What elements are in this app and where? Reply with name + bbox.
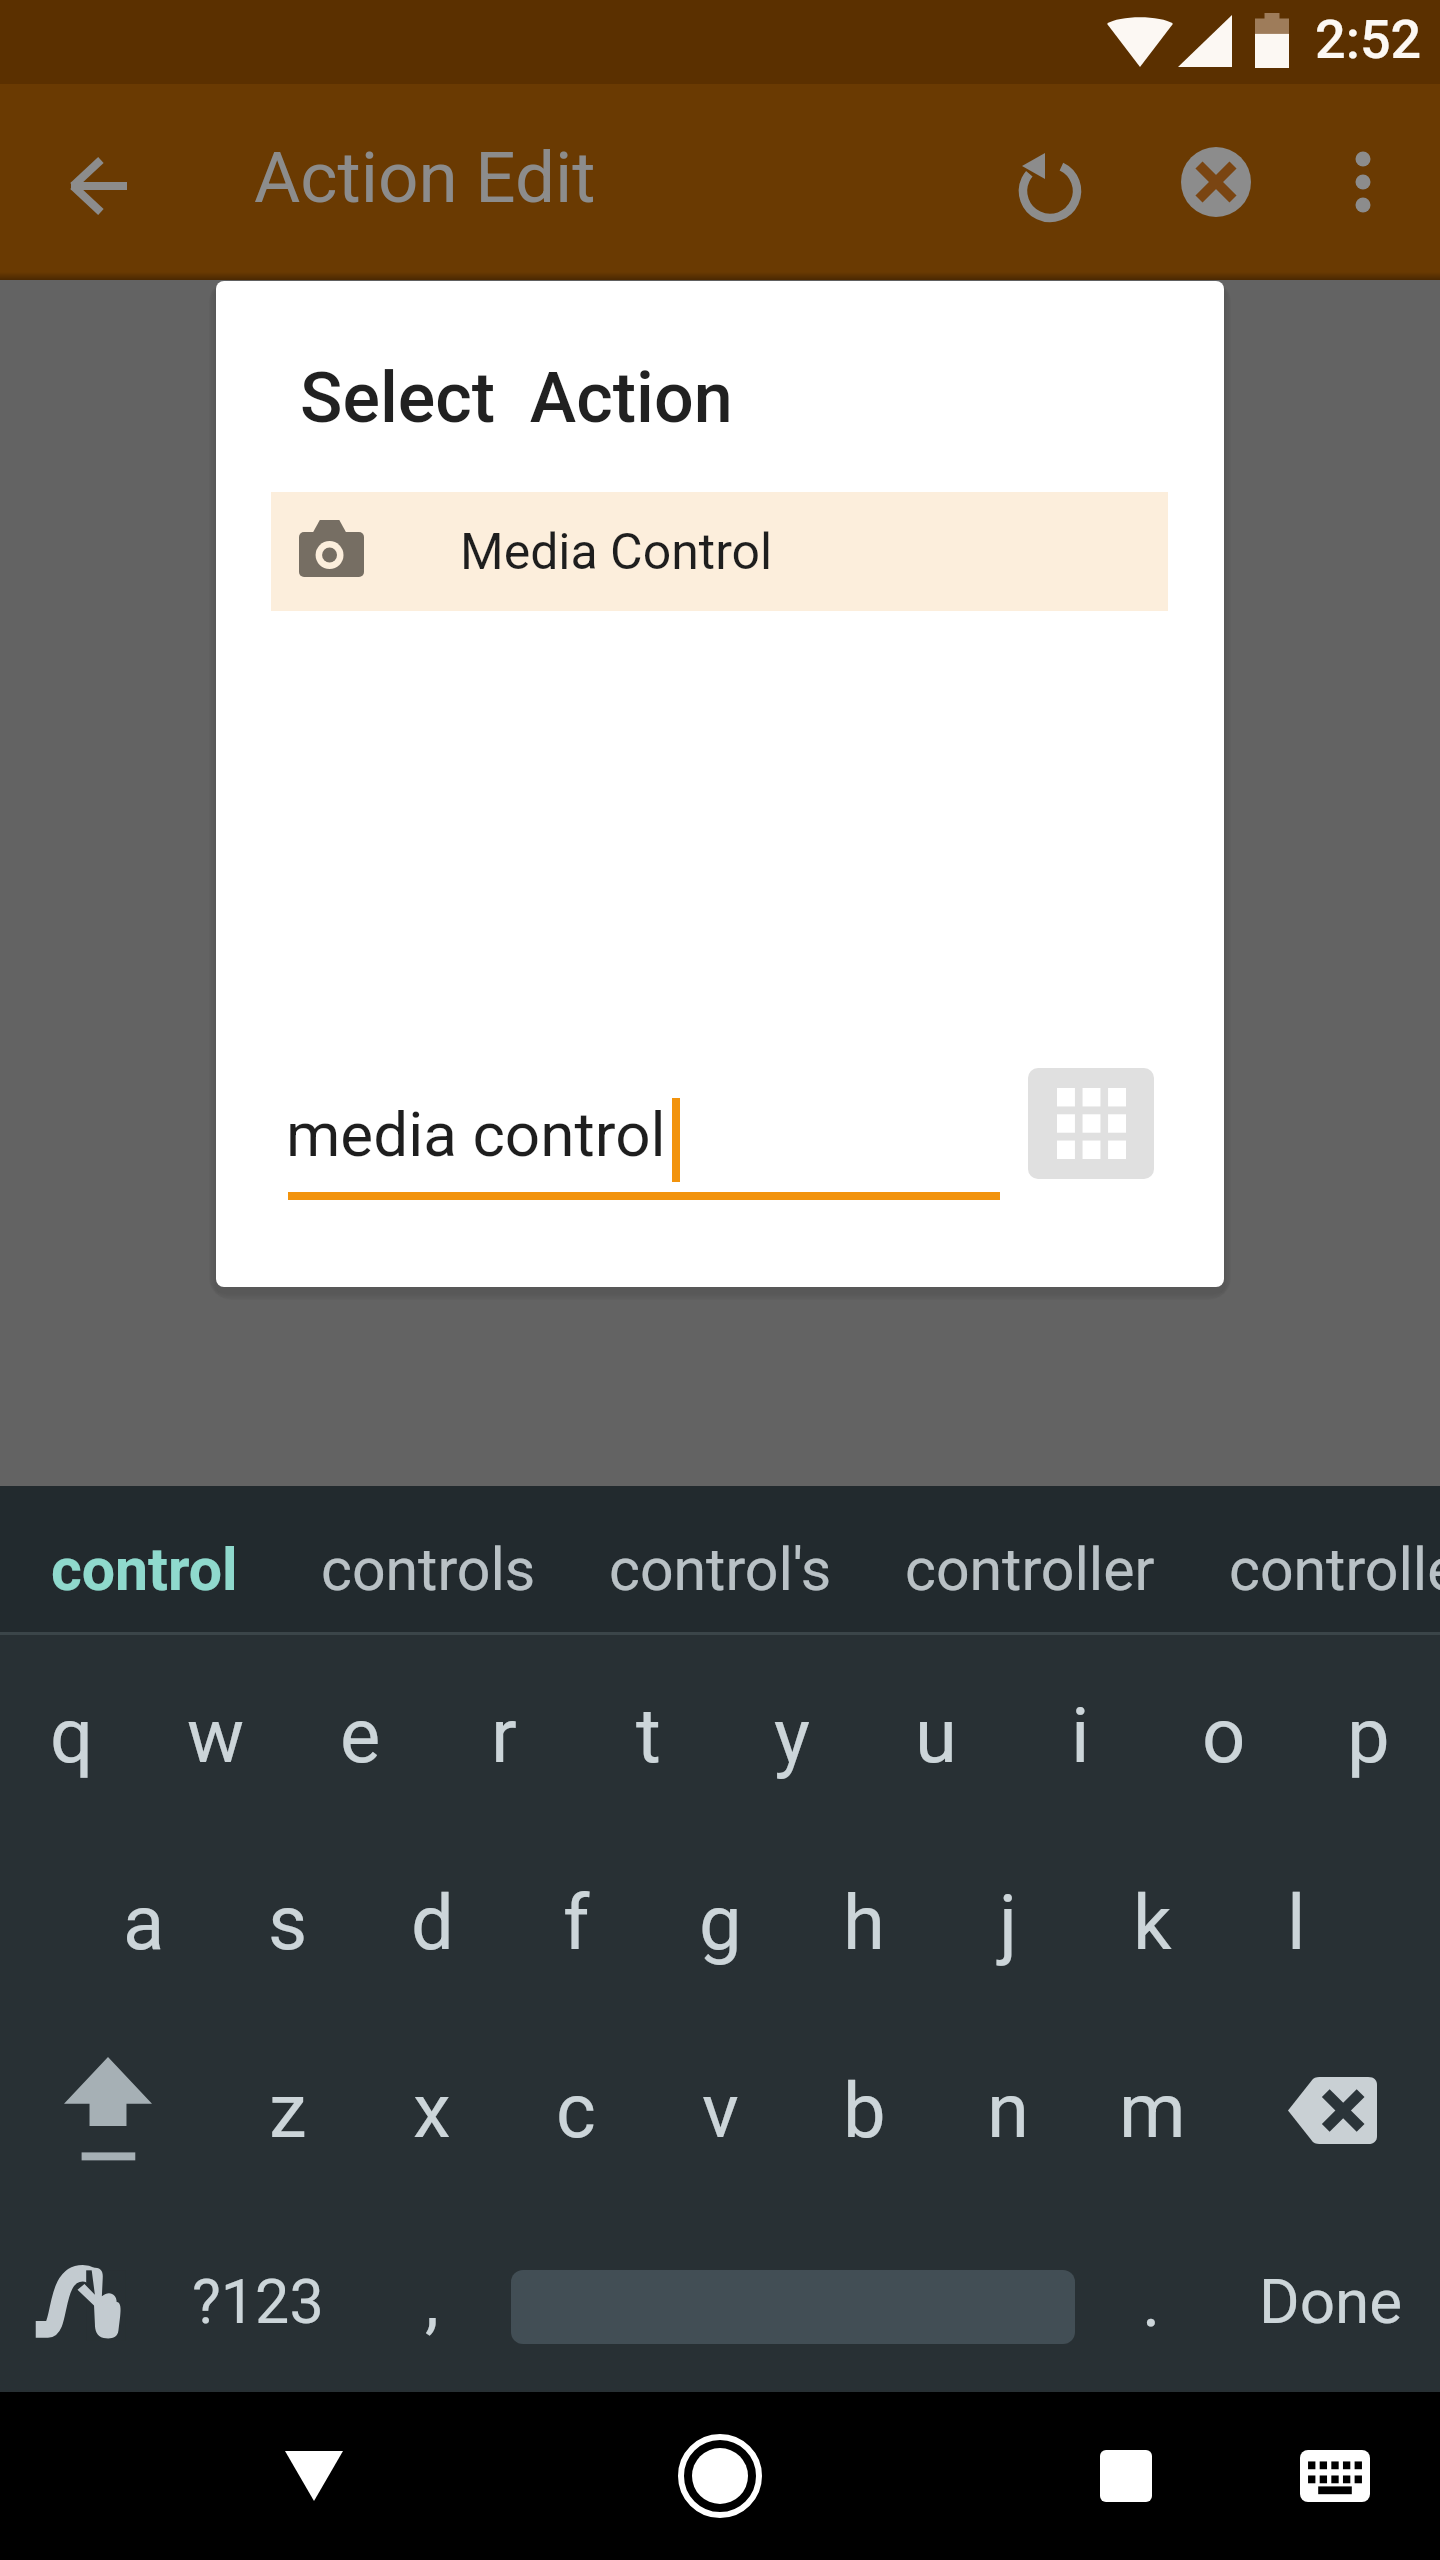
button[interactable]: Recent apps (1056, 2392, 1196, 2560)
staticText: d (411, 1878, 454, 1967)
staticText: j (999, 1878, 1018, 1967)
staticText: Action Edit (254, 136, 596, 219)
button[interactable]: e (288, 1635, 432, 1835)
button[interactable]: ?123 (155, 2211, 361, 2392)
button[interactable]: z (216, 2009, 360, 2211)
staticText: Select Action (300, 357, 733, 439)
staticText: 2:52 (1315, 8, 1422, 71)
button[interactable]: controls (321, 1486, 536, 1632)
button[interactable]: . (1080, 2211, 1222, 2392)
button[interactable]: g (648, 1835, 792, 2009)
staticText: control's (609, 1535, 832, 1604)
staticText: . (1142, 2261, 1161, 2343)
button[interactable]: r (432, 1635, 576, 1835)
staticText: c (556, 2066, 596, 2155)
button[interactable]: Media Control (271, 492, 1168, 611)
staticText: e (340, 1691, 381, 1780)
staticText: controls (321, 1535, 536, 1604)
staticText: Done (1259, 2265, 1403, 2338)
staticText: o (1202, 1691, 1246, 1780)
staticText: q (50, 1691, 94, 1780)
button[interactable]: w (144, 1635, 288, 1835)
button[interactable]: Voice input (0, 2211, 155, 2392)
staticText: z (269, 2066, 307, 2155)
staticText: r (491, 1691, 517, 1780)
staticText: w (187, 1691, 245, 1780)
staticText: n (987, 2066, 1029, 2155)
staticText: l (1287, 1878, 1306, 1967)
button[interactable]: media control (286, 1071, 1002, 1200)
staticText: control (51, 1535, 238, 1604)
button[interactable]: Grid view (1028, 1068, 1154, 1179)
button[interactable]: Switch keyboard (1265, 2392, 1405, 2560)
button[interactable]: control's (609, 1486, 832, 1632)
button[interactable]: control (51, 1486, 238, 1632)
button[interactable]: y (720, 1635, 864, 1835)
staticText: f (563, 1878, 590, 1967)
button[interactable]: k (1080, 1835, 1224, 2009)
staticText: y (774, 1691, 810, 1780)
button[interactable]: b (792, 2009, 936, 2211)
button[interactable]: t (576, 1635, 720, 1835)
staticText: h (843, 1878, 885, 1967)
button[interactable]: Hide keyboard (244, 2392, 384, 2560)
button[interactable]: c (504, 2009, 648, 2211)
button[interactable]: Shift (0, 2009, 216, 2211)
staticText: p (1347, 1691, 1390, 1780)
button[interactable]: Undo (978, 116, 1114, 252)
button[interactable]: a (72, 1835, 216, 2009)
staticText: media control (286, 1098, 666, 1171)
staticText: t (636, 1691, 661, 1780)
staticText: ?123 (192, 2266, 324, 2337)
button[interactable]: Done (1222, 2211, 1440, 2392)
staticText: controller (905, 1535, 1155, 1604)
button[interactable]: j (936, 1835, 1080, 2009)
button[interactable]: s (216, 1835, 360, 2009)
button[interactable]: m (1080, 2009, 1224, 2211)
button[interactable]: l (1224, 1835, 1368, 2009)
button[interactable]: v (648, 2009, 792, 2211)
button[interactable]: n (936, 2009, 1080, 2211)
staticText: a (123, 1878, 165, 1967)
staticText: b (843, 2066, 886, 2155)
button[interactable]: q (0, 1635, 144, 1835)
staticText: , (425, 2261, 439, 2343)
button[interactable]: x (360, 2009, 504, 2211)
staticText: i (1071, 1691, 1090, 1780)
button[interactable]: Backspace (1224, 2009, 1440, 2211)
staticText: v (702, 2066, 739, 2155)
staticText: u (915, 1691, 957, 1780)
button[interactable]: , (361, 2211, 503, 2392)
button[interactable]: i (1008, 1635, 1152, 1835)
button[interactable]: o (1152, 1635, 1296, 1835)
button[interactable]: p (1296, 1635, 1440, 1835)
button[interactable]: Close (1146, 112, 1286, 252)
button[interactable]: More options (1303, 122, 1423, 242)
button[interactable]: u (864, 1635, 1008, 1835)
button[interactable]: Home (650, 2406, 790, 2546)
staticText: s (268, 1878, 308, 1967)
button[interactable]: controller (905, 1486, 1155, 1632)
staticText: g (699, 1878, 742, 1967)
button[interactable]: d (360, 1835, 504, 2009)
staticText: controller (1229, 1535, 1440, 1604)
button[interactable]: f (504, 1835, 648, 2009)
button[interactable]: h (792, 1835, 936, 2009)
button[interactable]: Back (38, 126, 158, 246)
staticText: k (1133, 1878, 1172, 1967)
button[interactable]: controller (1229, 1486, 1440, 1632)
staticText: m (1119, 2066, 1186, 2155)
staticText: x (413, 2066, 451, 2155)
staticText: Media Control (460, 523, 773, 582)
